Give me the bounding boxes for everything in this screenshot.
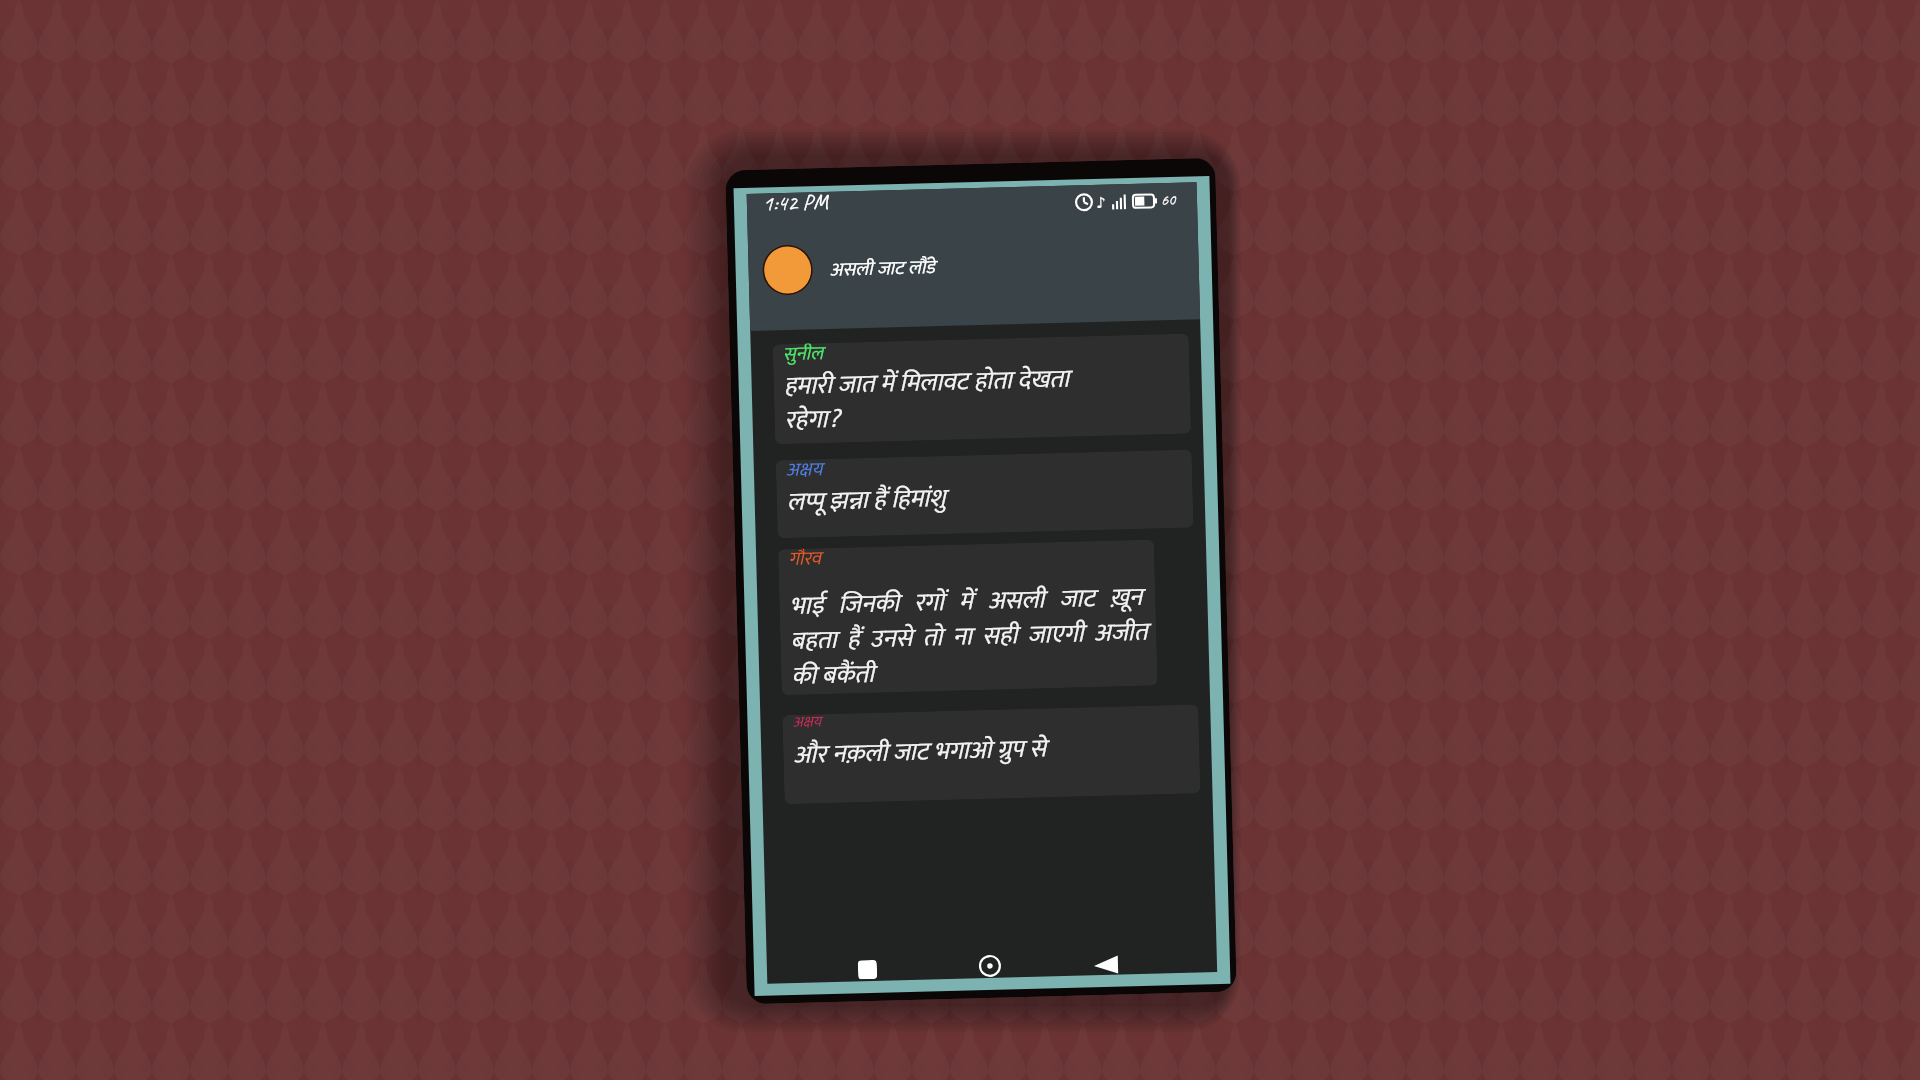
staticText: 1:42 PM: [762, 188, 828, 218]
button[interactable]: सुनील: [773, 333, 1191, 444]
staticText: हमारी जात में मिलावट होता देखता रहेगा?: [783, 359, 1071, 441]
button[interactable]: गौरव: [778, 539, 1158, 695]
button[interactable]: Home: [941, 946, 1037, 986]
button[interactable]: Recents: [819, 949, 915, 989]
staticText: अक्षय: [792, 714, 822, 735]
button[interactable]: Group avatar: [762, 244, 813, 296]
staticText: ♪: [1096, 194, 1106, 211]
button[interactable]: अक्षय: [782, 704, 1200, 804]
staticText: गौरव: [788, 548, 822, 576]
staticText: भाई जिनकी रगों में असली जाट ख़ून बहता है…: [789, 577, 1150, 695]
button[interactable]: अक्षय: [776, 449, 1193, 538]
staticText: लप्पू झन्ना हैं हिमांशु: [786, 478, 946, 524]
staticText: सुनील: [783, 343, 824, 371]
button[interactable]: Back: [1057, 945, 1153, 985]
staticText: अक्षय: [786, 459, 823, 487]
staticText: 60: [1161, 190, 1176, 210]
staticText: असली जाट लौंडे: [829, 252, 936, 287]
staticText: और नक़ली जाट भगाओ ग्रुप से: [793, 728, 1047, 777]
